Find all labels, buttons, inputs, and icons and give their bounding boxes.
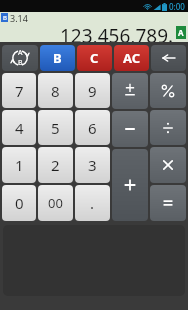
button[interactable]: 9 [75,73,110,108]
staticText: B [53,49,62,67]
button[interactable]: 00 [38,185,73,221]
staticText: 0 [15,193,24,213]
button[interactable]: 6 [75,110,110,145]
button[interactable]: B [40,45,75,71]
button[interactable]: . [75,185,110,221]
staticText: 3 [88,155,97,175]
button[interactable]: 5 [38,110,73,145]
staticText: B [3,14,7,22]
button[interactable]: Percent [150,73,186,108]
button[interactable]: 1 [2,147,36,183]
staticText: 7 [15,81,24,101]
staticText: 123,456,789. [60,23,174,42]
button[interactable]: 8 [38,73,73,108]
staticText: . [90,193,95,213]
button[interactable]: Backspace [151,45,186,71]
staticText: 00 [48,194,63,212]
staticText: B [18,58,23,68]
staticText: 5 [51,118,60,138]
button[interactable]: Swap A and B [2,45,38,71]
button[interactable]: Plus minus sign [112,73,148,109]
button[interactable]: 7 [2,73,36,108]
staticText: A [18,48,23,58]
staticText: C [90,49,99,67]
staticText: 6 [88,118,97,138]
button[interactable]: 4 [2,110,36,145]
button[interactable]: Multiply [150,147,186,183]
button[interactable]: 2 [38,147,73,183]
staticText: AC [123,49,141,67]
staticText: 9 [88,81,97,101]
staticText: 0:00 [169,1,185,12]
button[interactable]: Plus [112,149,148,221]
button[interactable]: 3 [75,147,110,183]
staticText: 8 [51,81,60,101]
button[interactable]: Minus [112,111,148,147]
staticText: 4 [15,118,24,138]
button[interactable]: Equals [150,185,186,221]
staticText: 3.14 [10,12,28,23]
staticText: 1 [15,155,24,175]
button[interactable]: 0 [2,185,36,221]
button[interactable]: AC [114,45,149,71]
staticText: A [178,27,184,38]
button[interactable]: Divide [150,110,186,145]
staticText: 2 [51,155,60,175]
button[interactable]: C [77,45,112,71]
